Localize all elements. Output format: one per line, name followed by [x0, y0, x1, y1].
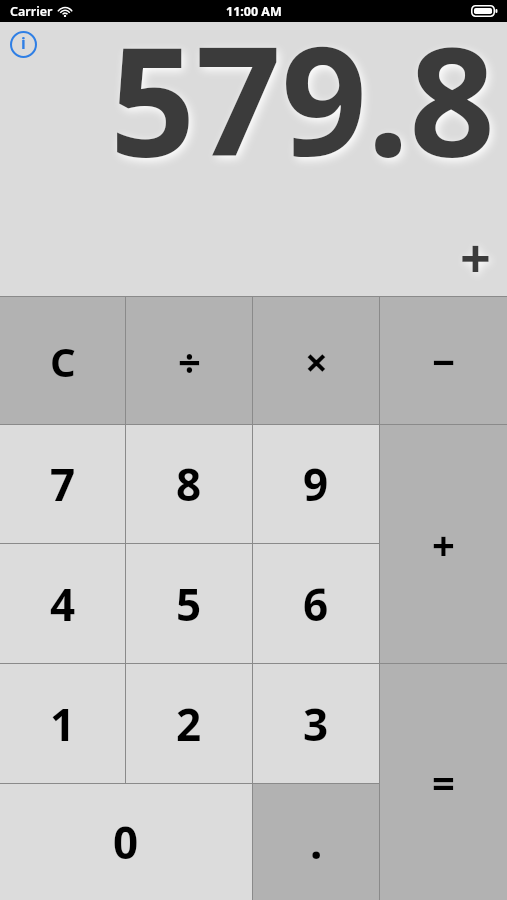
staticText: 0: [113, 812, 139, 872]
staticText: 3: [303, 694, 329, 754]
staticText: 7: [50, 454, 76, 514]
button[interactable]: 6: [253, 544, 379, 663]
staticText: C: [50, 334, 76, 388]
button[interactable]: .: [253, 784, 379, 900]
button[interactable]: Info: [4, 25, 42, 63]
button[interactable]: =: [380, 664, 507, 900]
button[interactable]: +: [380, 425, 507, 663]
button[interactable]: 4: [0, 544, 125, 663]
staticText: 11:00 AM: [226, 3, 282, 20]
staticText: 4: [50, 574, 76, 634]
button[interactable]: 2: [126, 664, 252, 783]
staticText: 1: [50, 694, 76, 754]
button[interactable]: C: [0, 297, 125, 424]
staticText: 2: [176, 694, 202, 754]
staticText: .: [310, 812, 323, 872]
button[interactable]: 9: [253, 425, 379, 543]
staticText: =: [432, 755, 455, 809]
staticText: 5: [176, 574, 202, 634]
staticText: +: [460, 220, 491, 294]
button[interactable]: 1: [0, 664, 125, 783]
staticText: 579.8: [8, 0, 495, 200]
staticText: 6: [303, 574, 329, 634]
button[interactable]: 7: [0, 425, 125, 543]
button[interactable]: ×: [253, 297, 379, 424]
staticText: Carrier: [10, 3, 53, 20]
staticText: ÷: [178, 334, 201, 388]
button[interactable]: 3: [253, 664, 379, 783]
button[interactable]: 8: [126, 425, 252, 543]
staticText: ×: [305, 334, 328, 388]
button[interactable]: 5: [126, 544, 252, 663]
staticText: 9: [303, 454, 329, 514]
staticText: 8: [176, 454, 202, 514]
button[interactable]: 0: [0, 784, 252, 900]
staticText: i: [21, 32, 26, 54]
staticText: +: [432, 517, 455, 571]
staticText: −: [432, 334, 456, 388]
button[interactable]: −: [380, 297, 507, 424]
button[interactable]: ÷: [126, 297, 252, 424]
